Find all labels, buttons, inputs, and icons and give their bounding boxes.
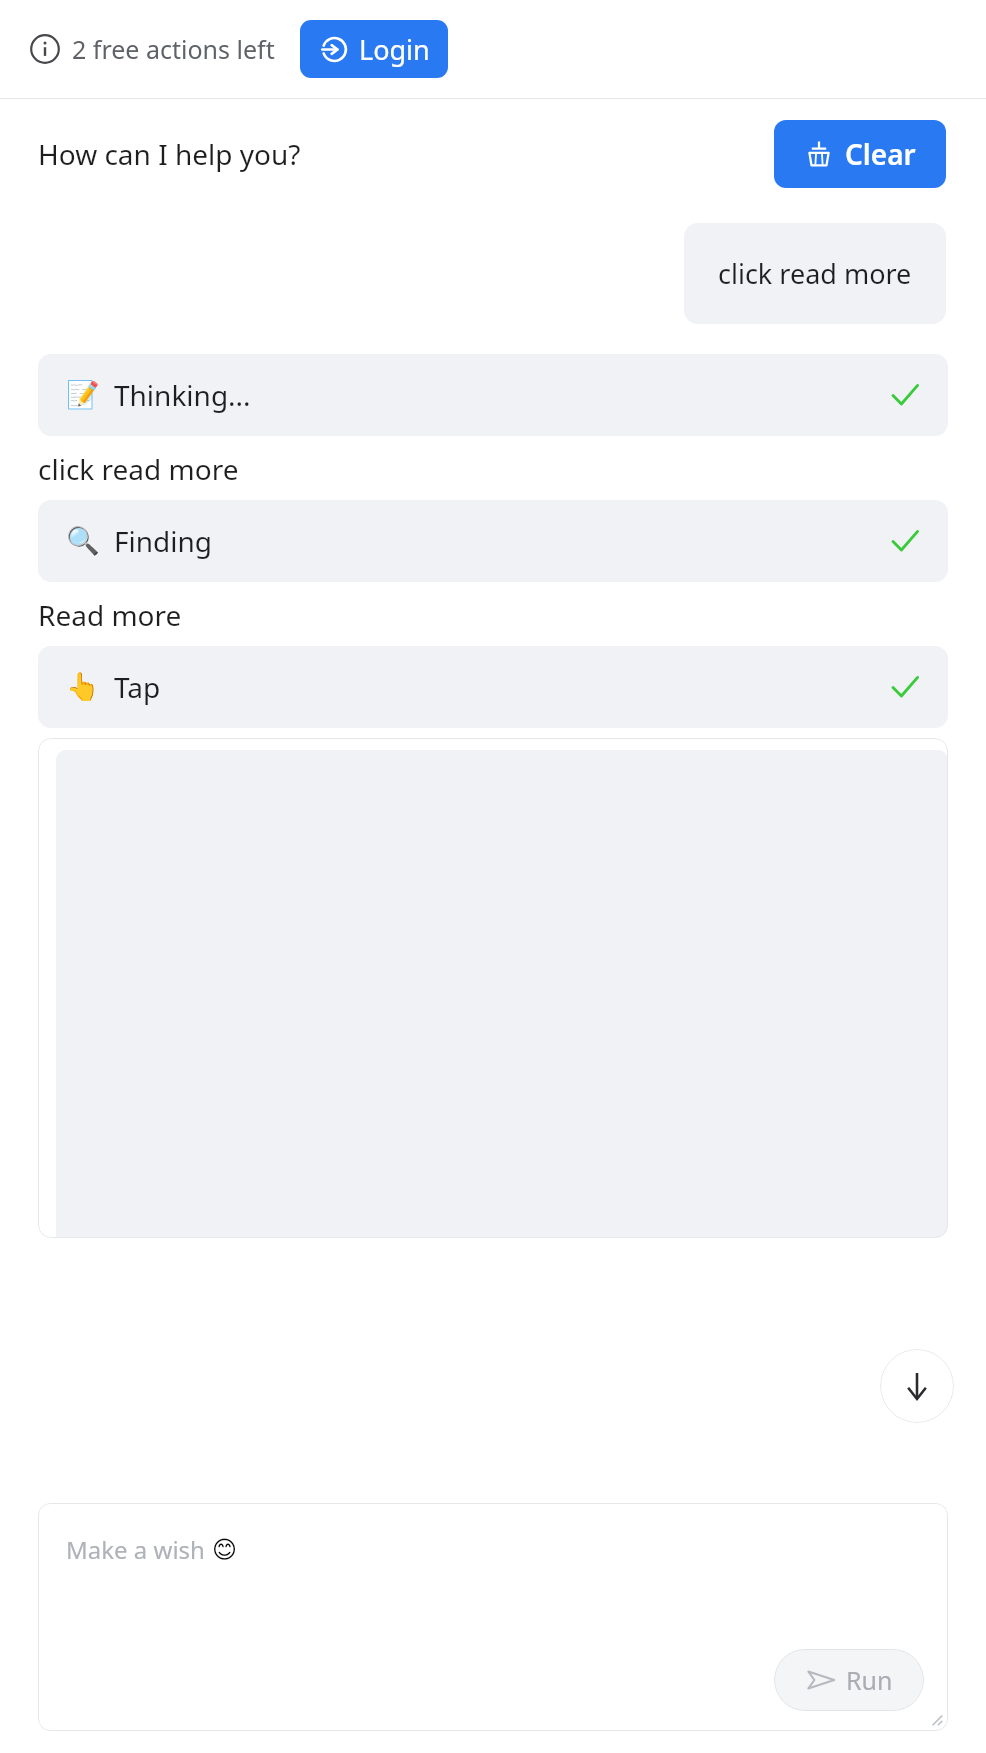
staticText: Thinking...: [114, 376, 251, 414]
staticText: click read more: [718, 255, 912, 292]
button[interactable]: Run: [774, 1649, 924, 1711]
staticText: 2 free actions left: [72, 32, 275, 66]
button[interactable]: Clear: [774, 120, 946, 188]
staticText: Make a wish: [66, 1533, 212, 1566]
staticText: Finding: [114, 522, 213, 560]
button[interactable]: 👆: [38, 646, 948, 728]
staticText: How can I help you?: [38, 135, 301, 173]
staticText: Read more: [38, 596, 182, 634]
staticText: Tap: [114, 668, 161, 706]
button[interactable]: 📝: [38, 354, 948, 436]
button[interactable]: 🔍: [38, 500, 948, 582]
staticText: 😊: [212, 1536, 238, 1564]
staticText: Run: [846, 1663, 893, 1697]
staticText: 🔍: [66, 525, 100, 557]
staticText: click read more: [38, 450, 239, 488]
staticText: Clear: [845, 135, 916, 173]
staticText: 👆: [66, 671, 100, 703]
button[interactable]: 2 free actions left: [30, 32, 275, 66]
button[interactable]: Make a wish: [38, 1503, 948, 1731]
button[interactable]: click read more: [684, 223, 946, 324]
staticText: Login: [359, 31, 430, 68]
button[interactable]: Scroll to bottom: [880, 1349, 954, 1423]
staticText: 📝: [66, 379, 100, 411]
button[interactable]: Login: [300, 20, 448, 78]
